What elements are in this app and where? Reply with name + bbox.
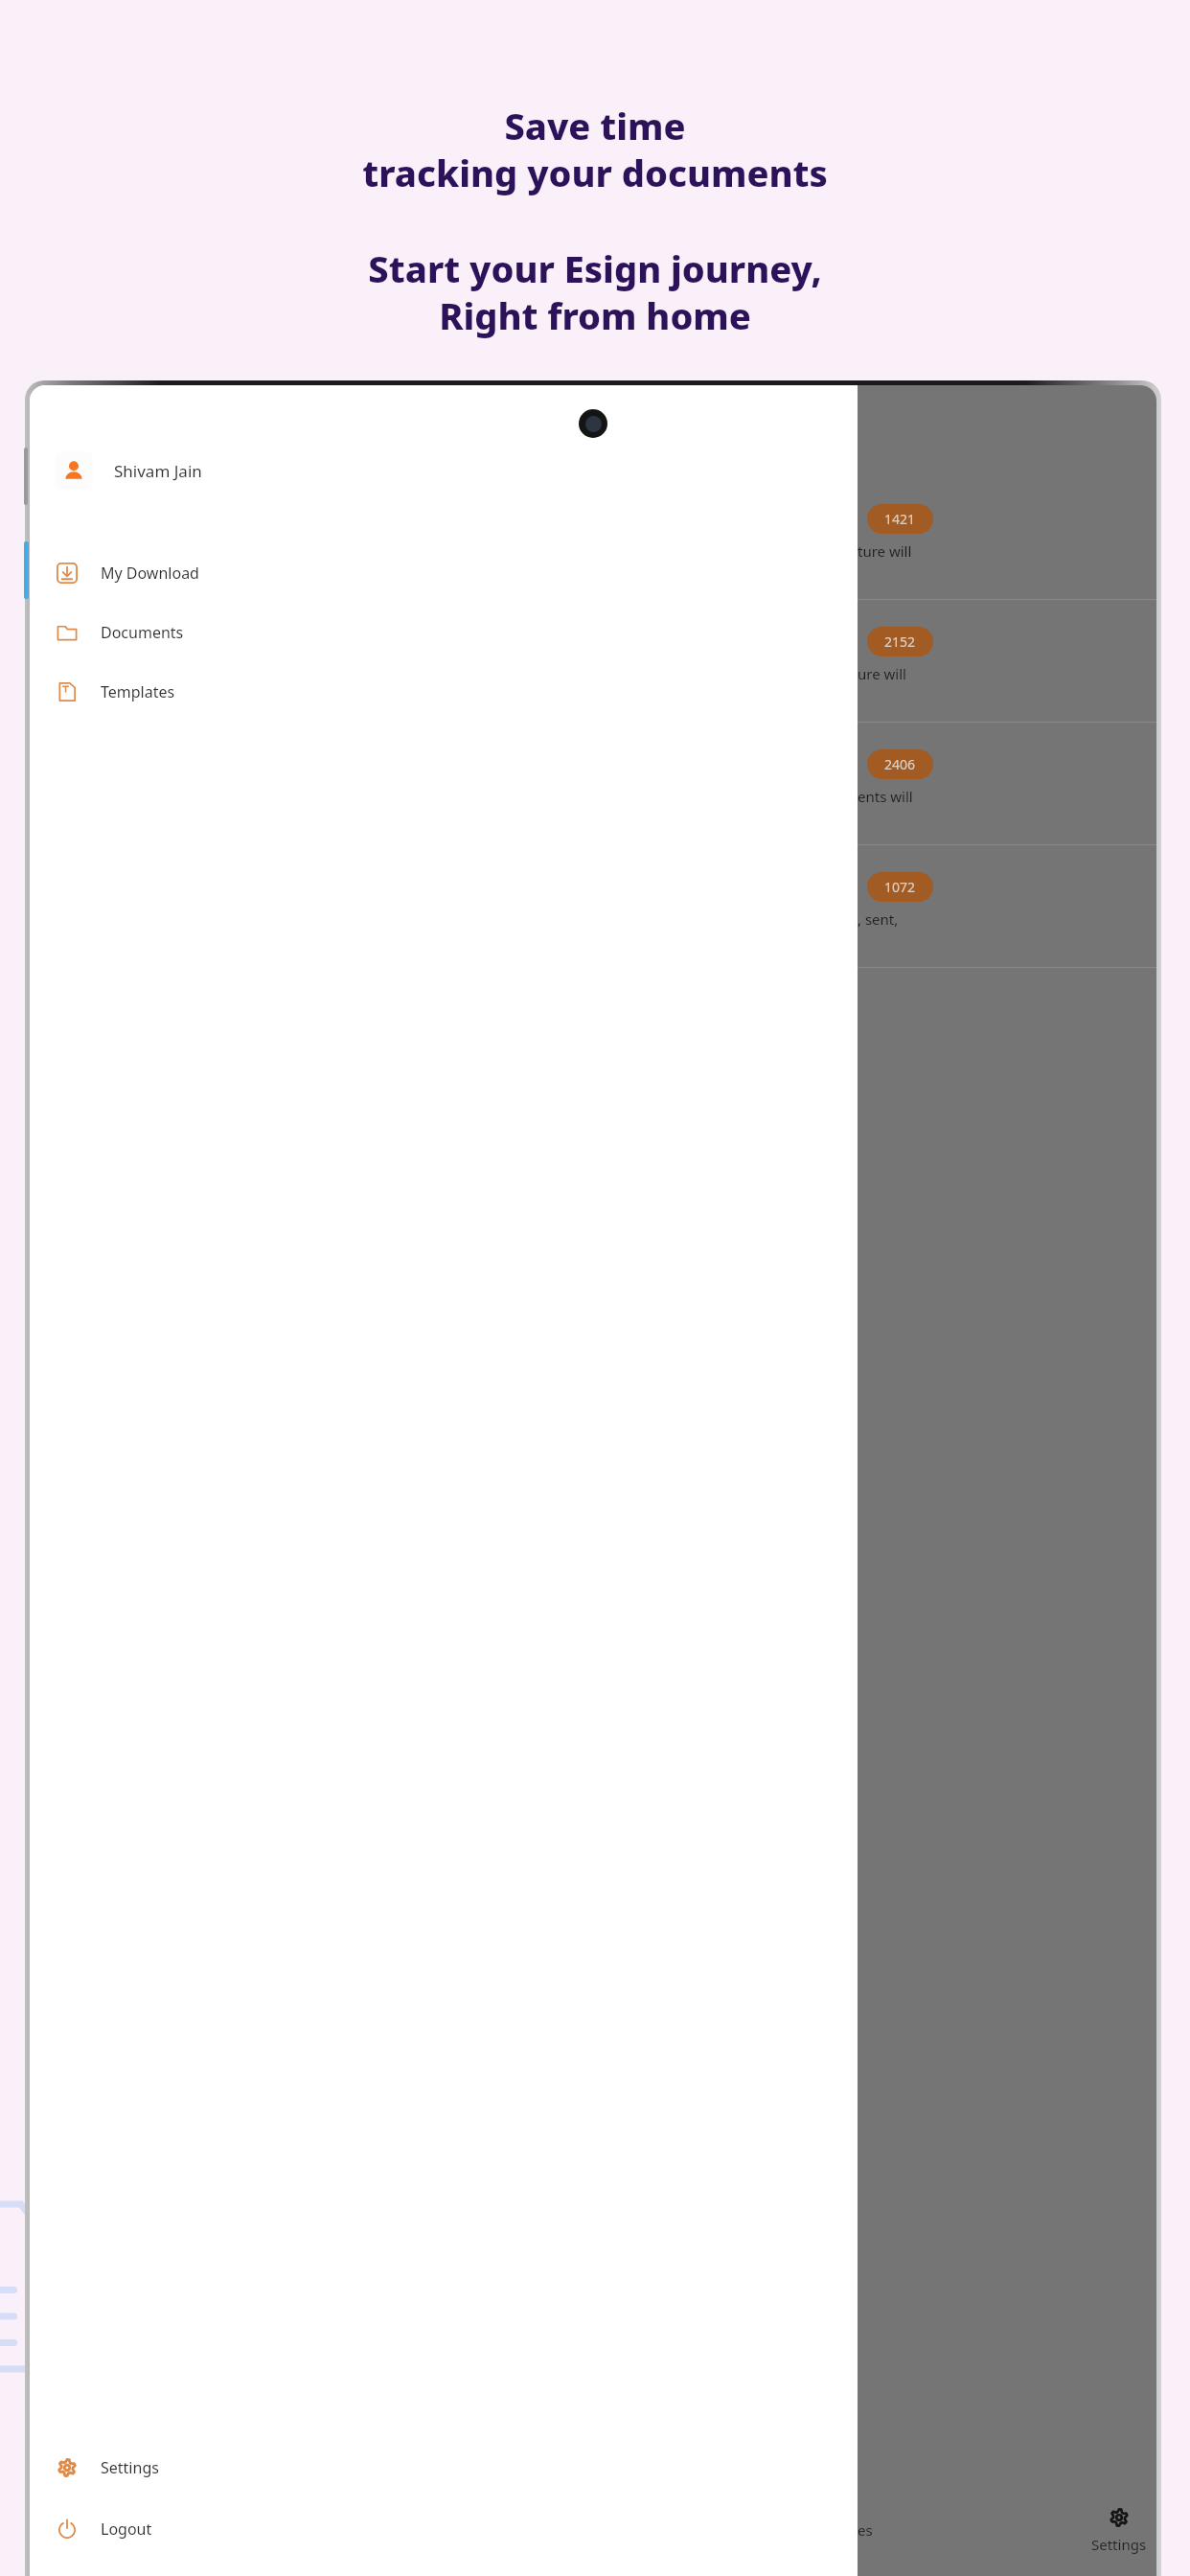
button[interactable]: Shivam Jain bbox=[30, 446, 858, 495]
button[interactable]: Documents bbox=[30, 614, 858, 651]
staticText: My Download bbox=[101, 563, 199, 584]
staticText: 2406 bbox=[884, 755, 916, 773]
staticText: ure will bbox=[858, 664, 906, 683]
staticText: Save time tracking your documents bbox=[362, 101, 828, 197]
button[interactable]: 1072 bbox=[858, 845, 1156, 968]
staticText: Start your Esign journey, Right from hom… bbox=[368, 243, 822, 340]
button[interactable]: Settings bbox=[30, 2449, 858, 2486]
staticText: 1421 bbox=[884, 510, 916, 528]
button[interactable]: 1421 bbox=[858, 477, 1156, 600]
button[interactable]: Settings bbox=[1091, 2506, 1147, 2554]
button[interactable]: My Download bbox=[30, 555, 858, 591]
staticText: ents will bbox=[858, 787, 913, 806]
button[interactable]: 2152 bbox=[858, 600, 1156, 723]
staticText: Settings bbox=[1091, 2535, 1147, 2554]
staticText: Logout bbox=[101, 2518, 152, 2540]
staticText: 2152 bbox=[884, 632, 916, 651]
staticText: 1072 bbox=[884, 878, 916, 896]
staticText: Documents bbox=[101, 622, 184, 643]
staticText: Shivam Jain bbox=[114, 460, 202, 482]
staticText: Settings bbox=[101, 2457, 159, 2478]
button[interactable]: Templates bbox=[30, 674, 858, 710]
button[interactable]: 2406 bbox=[858, 723, 1156, 845]
staticText: es bbox=[858, 2520, 873, 2540]
staticText: Templates bbox=[101, 681, 175, 702]
staticText: , sent, bbox=[858, 909, 899, 929]
staticText: ture will bbox=[858, 541, 912, 561]
button[interactable]: Logout bbox=[30, 2511, 858, 2547]
